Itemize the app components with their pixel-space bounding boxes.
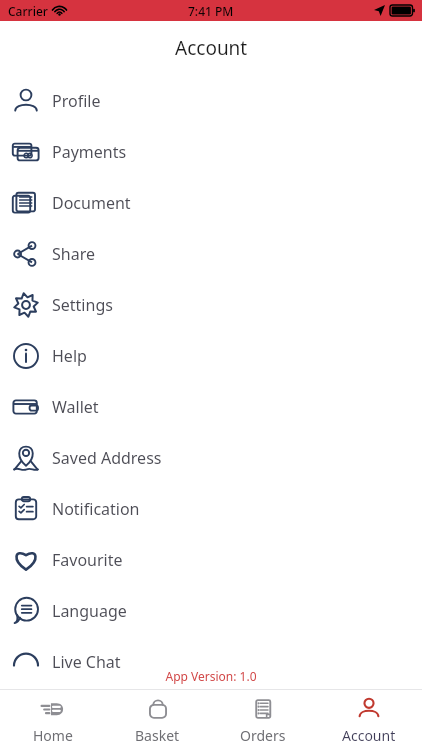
- staticText: Document: [52, 192, 131, 214]
- button[interactable]: Favourite: [0, 534, 422, 585]
- button[interactable]: Orders: [210, 690, 316, 750]
- staticText: Help: [52, 345, 87, 367]
- button[interactable]: Settings: [0, 279, 422, 330]
- button[interactable]: Home: [0, 690, 105, 750]
- button[interactable]: Help: [0, 330, 422, 381]
- staticText: Share: [52, 243, 95, 265]
- button[interactable]: Live Chat: [0, 636, 422, 687]
- button[interactable]: Payments: [0, 126, 422, 177]
- button[interactable]: Language: [0, 585, 422, 636]
- button[interactable]: Share: [0, 228, 422, 279]
- staticText: Live Chat: [52, 651, 121, 673]
- button[interactable]: Saved Address: [0, 432, 422, 483]
- staticText: 7:41 PM: [188, 3, 234, 19]
- staticText: Notification: [52, 498, 140, 520]
- staticText: Saved Address: [52, 447, 162, 469]
- staticText: App Version: 1.0: [165, 668, 257, 684]
- button[interactable]: Wallet: [0, 381, 422, 432]
- button[interactable]: Document: [0, 177, 422, 228]
- staticText: Favourite: [52, 549, 123, 571]
- staticText: Account: [342, 726, 396, 745]
- button[interactable]: Account: [316, 690, 422, 750]
- button[interactable]: Notification: [0, 483, 422, 534]
- button[interactable]: Basket: [105, 690, 210, 750]
- staticText: Orders: [240, 726, 286, 745]
- button[interactable]: Profile: [0, 75, 422, 126]
- staticText: Settings: [52, 294, 113, 316]
- staticText: Carrier: [8, 3, 48, 19]
- staticText: Payments: [52, 141, 127, 163]
- staticText: Home: [33, 726, 73, 745]
- staticText: Basket: [135, 726, 180, 745]
- staticText: Profile: [52, 90, 101, 112]
- staticText: Account: [175, 35, 248, 61]
- staticText: Wallet: [52, 396, 99, 418]
- staticText: Language: [52, 600, 127, 622]
